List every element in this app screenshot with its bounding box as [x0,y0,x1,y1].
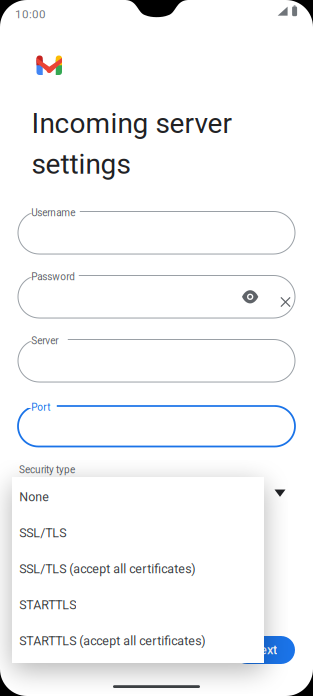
button[interactable]: None [12,479,264,515]
button[interactable]: SSL/TLS [12,515,264,551]
staticText: SSL/TLS (accept all certificates) [19,562,195,576]
staticText: STARTTLS (accept all certificates) [19,634,205,648]
staticText: Next [251,643,277,657]
staticText: None [19,490,49,504]
button[interactable]: Clear password [280,297,291,307]
button[interactable]: SSL/TLS (accept all certificates) [12,551,264,587]
staticText: Password [31,271,75,283]
staticText: Incoming server settings [31,107,231,181]
button[interactable]: STARTTLS [12,587,264,623]
staticText: SSL/TLS [19,526,66,540]
staticText: Server [31,335,58,347]
staticText: Security type [19,464,75,476]
button[interactable]: STARTTLS (accept all certificates) [12,623,264,659]
staticText: 10:00 [15,7,46,21]
staticText: Port [31,401,50,413]
button[interactable]: Next [233,636,295,664]
staticText: Username [31,207,75,219]
staticText: STARTTLS [19,598,76,612]
